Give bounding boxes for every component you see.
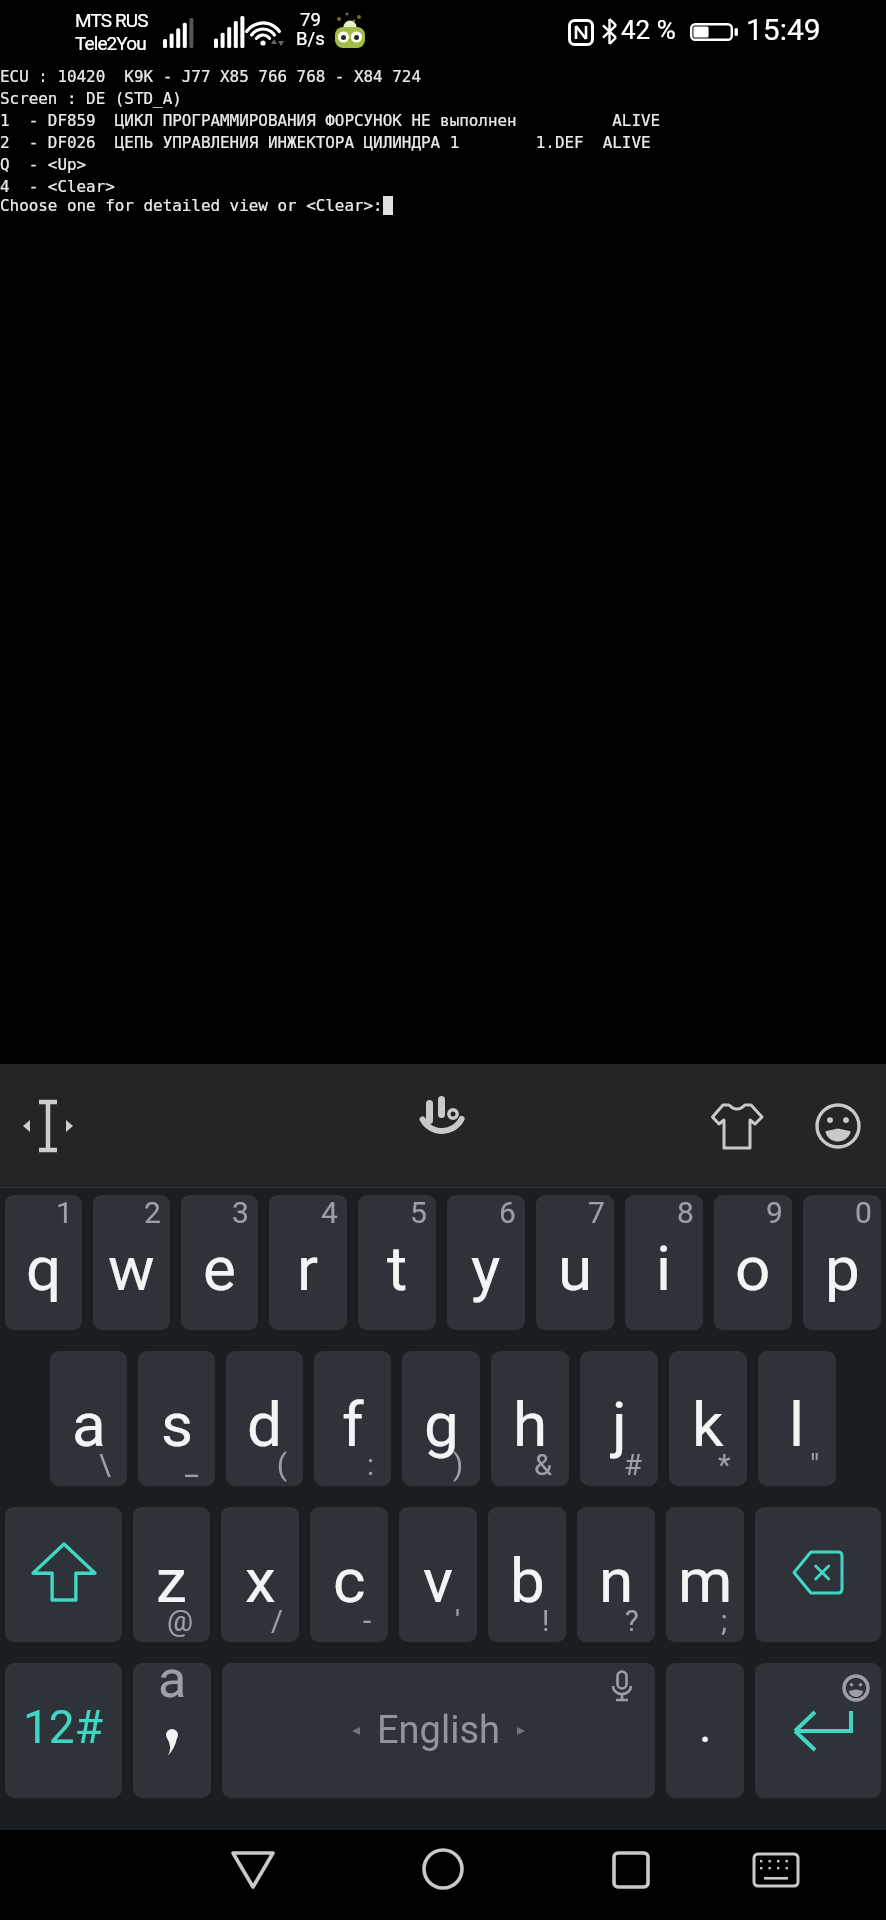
staticText: c <box>333 1544 366 1617</box>
staticText: . <box>699 1697 712 1753</box>
button[interactable] <box>223 1840 283 1900</box>
staticText: 6 <box>499 1195 516 1230</box>
staticText: t <box>387 1232 408 1305</box>
button[interactable] <box>413 1839 473 1899</box>
staticText: & <box>534 1448 553 1482</box>
button[interactable] <box>746 1840 806 1900</box>
staticText: B/s <box>296 28 325 50</box>
staticText: a <box>72 1388 106 1461</box>
staticText: ; <box>721 1604 728 1638</box>
button[interactable]: x <box>221 1507 299 1642</box>
staticText: p <box>825 1232 860 1305</box>
button[interactable]: b <box>488 1507 566 1642</box>
staticText: s <box>161 1388 193 1461</box>
button[interactable]: l <box>758 1351 836 1486</box>
staticText: 0 <box>855 1195 872 1230</box>
button[interactable]: f <box>314 1351 391 1486</box>
button[interactable]: d <box>226 1351 303 1486</box>
button[interactable]: c <box>310 1507 388 1642</box>
staticText: 12# <box>23 1700 104 1754</box>
staticText: k <box>692 1388 724 1461</box>
button[interactable]: q <box>5 1195 82 1330</box>
staticText: 7 <box>588 1195 605 1230</box>
staticText: English <box>377 1708 500 1753</box>
button[interactable] <box>712 1096 772 1156</box>
staticText: @ <box>167 1604 194 1638</box>
staticText: l <box>789 1388 805 1461</box>
staticText: 4 <box>321 1195 338 1230</box>
staticText: " <box>810 1448 820 1482</box>
staticText: q <box>26 1232 62 1305</box>
staticText: d <box>247 1388 282 1461</box>
button[interactable]: y <box>447 1195 525 1330</box>
button[interactable]: k <box>669 1351 747 1486</box>
staticText: ) <box>453 1448 464 1482</box>
staticText: * <box>718 1448 731 1482</box>
staticText: 15:49 <box>746 12 821 47</box>
staticText: 5 <box>410 1195 427 1230</box>
button[interactable]: i <box>625 1195 703 1330</box>
button[interactable] <box>5 1507 122 1642</box>
button[interactable]: a <box>133 1663 211 1798</box>
staticText: r <box>297 1232 319 1305</box>
staticText: u <box>558 1232 593 1305</box>
staticText: \ <box>99 1448 111 1482</box>
button[interactable]: v <box>399 1507 477 1642</box>
button[interactable]: u <box>536 1195 614 1330</box>
staticText: / <box>271 1604 283 1638</box>
button[interactable]: t <box>358 1195 436 1330</box>
button[interactable]: 12# <box>5 1663 122 1798</box>
staticText: # <box>624 1448 642 1482</box>
staticText: 2 <box>144 1195 161 1230</box>
staticText: Choose one for detailed view or <Clear>: <box>0 196 383 215</box>
staticText: f <box>342 1388 364 1461</box>
button[interactable]: h <box>491 1351 569 1486</box>
button[interactable]: j <box>580 1351 658 1486</box>
button[interactable]: s <box>138 1351 215 1486</box>
button[interactable]: r <box>269 1195 347 1330</box>
button[interactable]: m <box>666 1507 744 1642</box>
staticText: v <box>423 1544 454 1617</box>
staticText: b <box>510 1544 545 1617</box>
staticText: - <box>363 1604 372 1638</box>
staticText: a <box>158 1663 187 1710</box>
staticText: MTS RUS <box>75 9 148 31</box>
staticText: : <box>367 1448 375 1482</box>
staticText: y <box>471 1232 501 1305</box>
staticText: g <box>424 1388 459 1461</box>
staticText: j <box>612 1388 627 1461</box>
staticText: 8 <box>677 1195 694 1230</box>
button[interactable]: a <box>50 1351 127 1486</box>
staticText: Tele2You <box>75 32 146 54</box>
button[interactable] <box>18 1096 78 1156</box>
staticText: 79 <box>300 9 321 31</box>
button[interactable]: English <box>222 1663 655 1798</box>
staticText: ( <box>277 1448 287 1482</box>
staticText: z <box>156 1544 187 1617</box>
button[interactable]: p <box>803 1195 881 1330</box>
staticText: 9 <box>766 1195 783 1230</box>
button[interactable] <box>755 1663 881 1798</box>
staticText: x <box>245 1544 276 1617</box>
button[interactable]: . <box>666 1663 744 1798</box>
button[interactable] <box>413 1096 473 1156</box>
button[interactable]: n <box>577 1507 655 1642</box>
staticText: w <box>108 1232 155 1305</box>
staticText: ! <box>542 1604 550 1638</box>
staticText: 3 <box>232 1195 249 1230</box>
staticText: h <box>513 1388 548 1461</box>
staticText: m <box>678 1544 733 1617</box>
staticText: o <box>735 1232 771 1305</box>
button[interactable]: e <box>181 1195 258 1330</box>
staticText: i <box>656 1232 672 1305</box>
button[interactable] <box>755 1507 881 1642</box>
staticText: 42 % <box>621 15 676 45</box>
button[interactable]: g <box>402 1351 480 1486</box>
button[interactable]: o <box>714 1195 792 1330</box>
button[interactable]: z <box>133 1507 210 1642</box>
staticText: e <box>203 1232 236 1305</box>
button[interactable]: w <box>93 1195 170 1330</box>
button[interactable] <box>601 1840 661 1900</box>
staticText: ECU : 10420 K9K - J77 X85 766 768 - X84 … <box>0 67 661 196</box>
button[interactable] <box>815 1103 861 1149</box>
